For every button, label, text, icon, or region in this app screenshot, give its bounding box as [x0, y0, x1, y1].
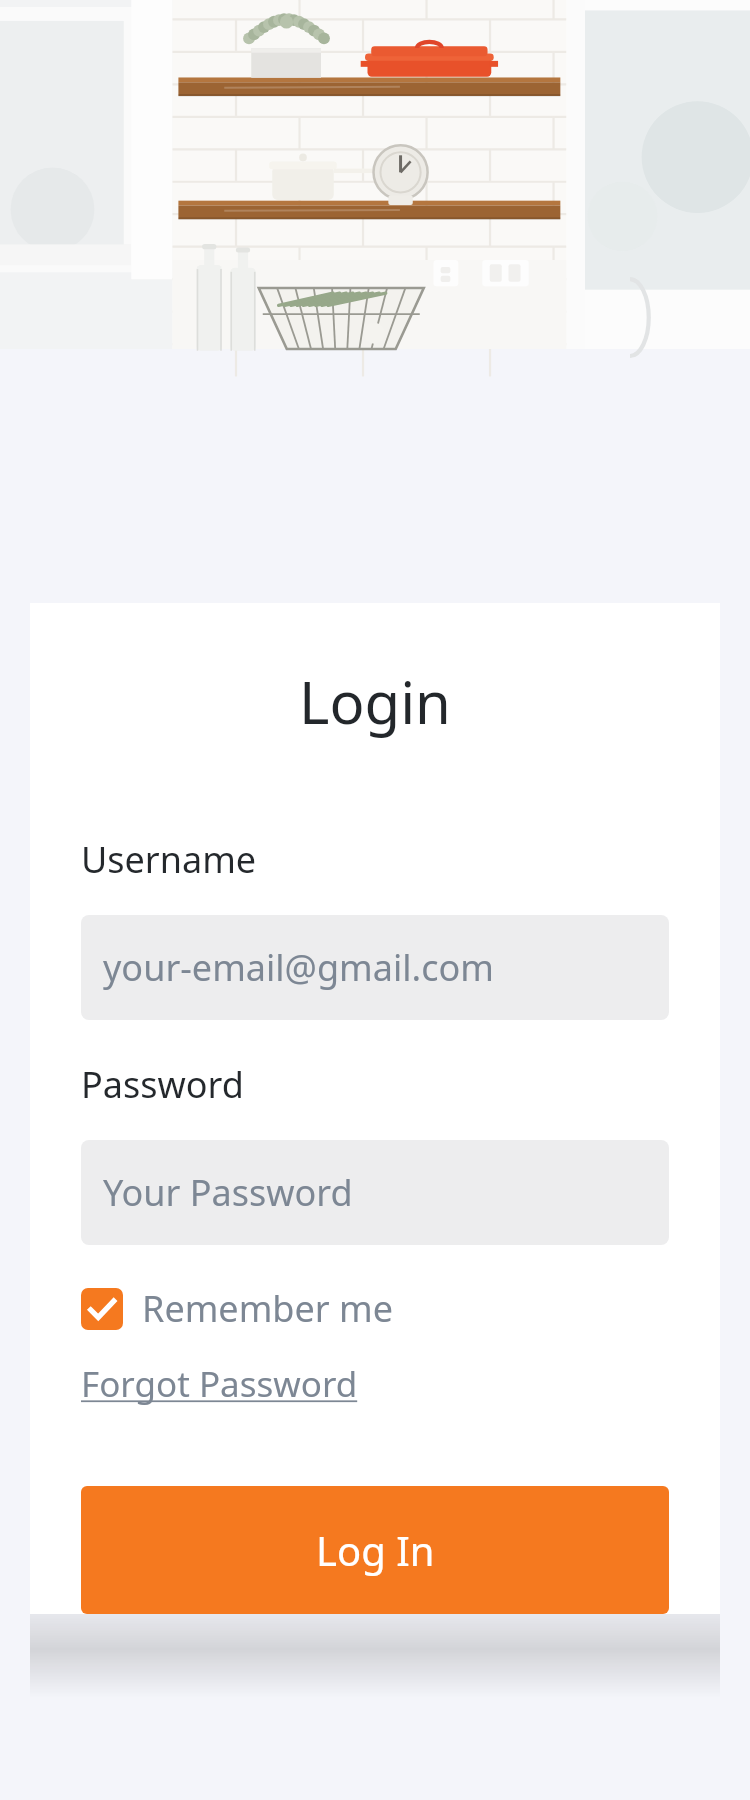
button[interactable]: Remember me checkbox — [81, 1284, 393, 1333]
button[interactable]: Forgot Password — [81, 1360, 358, 1408]
staticText: Username — [81, 835, 257, 884]
other: Remember me checkbox — [81, 1288, 123, 1330]
staticText: your-email@gmail.com — [103, 943, 494, 992]
button[interactable]: Your Password — [81, 1140, 669, 1245]
staticText: Remember me — [142, 1284, 393, 1333]
staticText: Your Password — [103, 1168, 353, 1217]
staticText: Password — [81, 1060, 244, 1109]
button[interactable]: your-email@gmail.com — [81, 915, 669, 1020]
staticText: Login — [299, 662, 451, 741]
staticText: Forgot Password — [81, 1360, 358, 1408]
staticText: Log In — [316, 1523, 435, 1577]
button[interactable]: Log In — [81, 1486, 669, 1614]
